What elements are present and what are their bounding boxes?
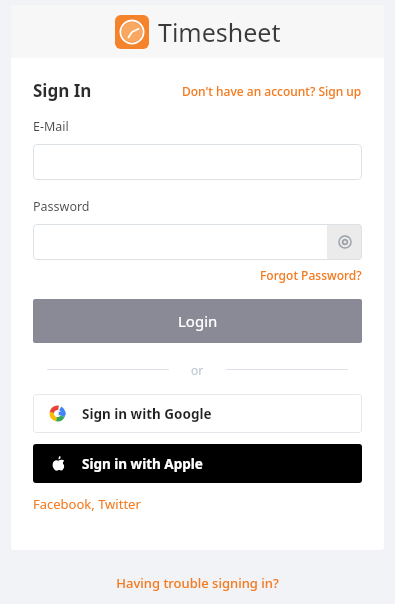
staticText: Login [178,311,218,331]
button[interactable]: Having trouble signing in? [116,574,279,592]
button[interactable]: Facebook, Twitter [33,495,141,513]
staticText: Sign in with Google [82,405,212,423]
button[interactable]: Forgot Password? [260,267,362,283]
staticText: Sign in with Apple [82,455,203,473]
button[interactable]: Login [33,299,362,343]
button[interactable]: Show password [327,224,362,260]
staticText: E-Mail [33,118,69,135]
button[interactable]: Sign in with Apple [33,444,362,483]
staticText: Having trouble signing in? [116,574,279,592]
staticText: or [191,362,204,376]
staticText: Timesheet [158,15,281,49]
button[interactable] [33,144,362,180]
button[interactable]: Sign in with Google [33,394,362,433]
button[interactable]: Don't have an account? Sign up [182,83,362,99]
staticText: Don't have an account? Sign up [182,83,362,99]
staticText: Sign In [33,79,92,102]
button[interactable] [33,224,327,260]
staticText: Password [33,198,90,215]
staticText: Facebook, Twitter [33,495,141,513]
staticText: Forgot Password? [260,267,362,283]
